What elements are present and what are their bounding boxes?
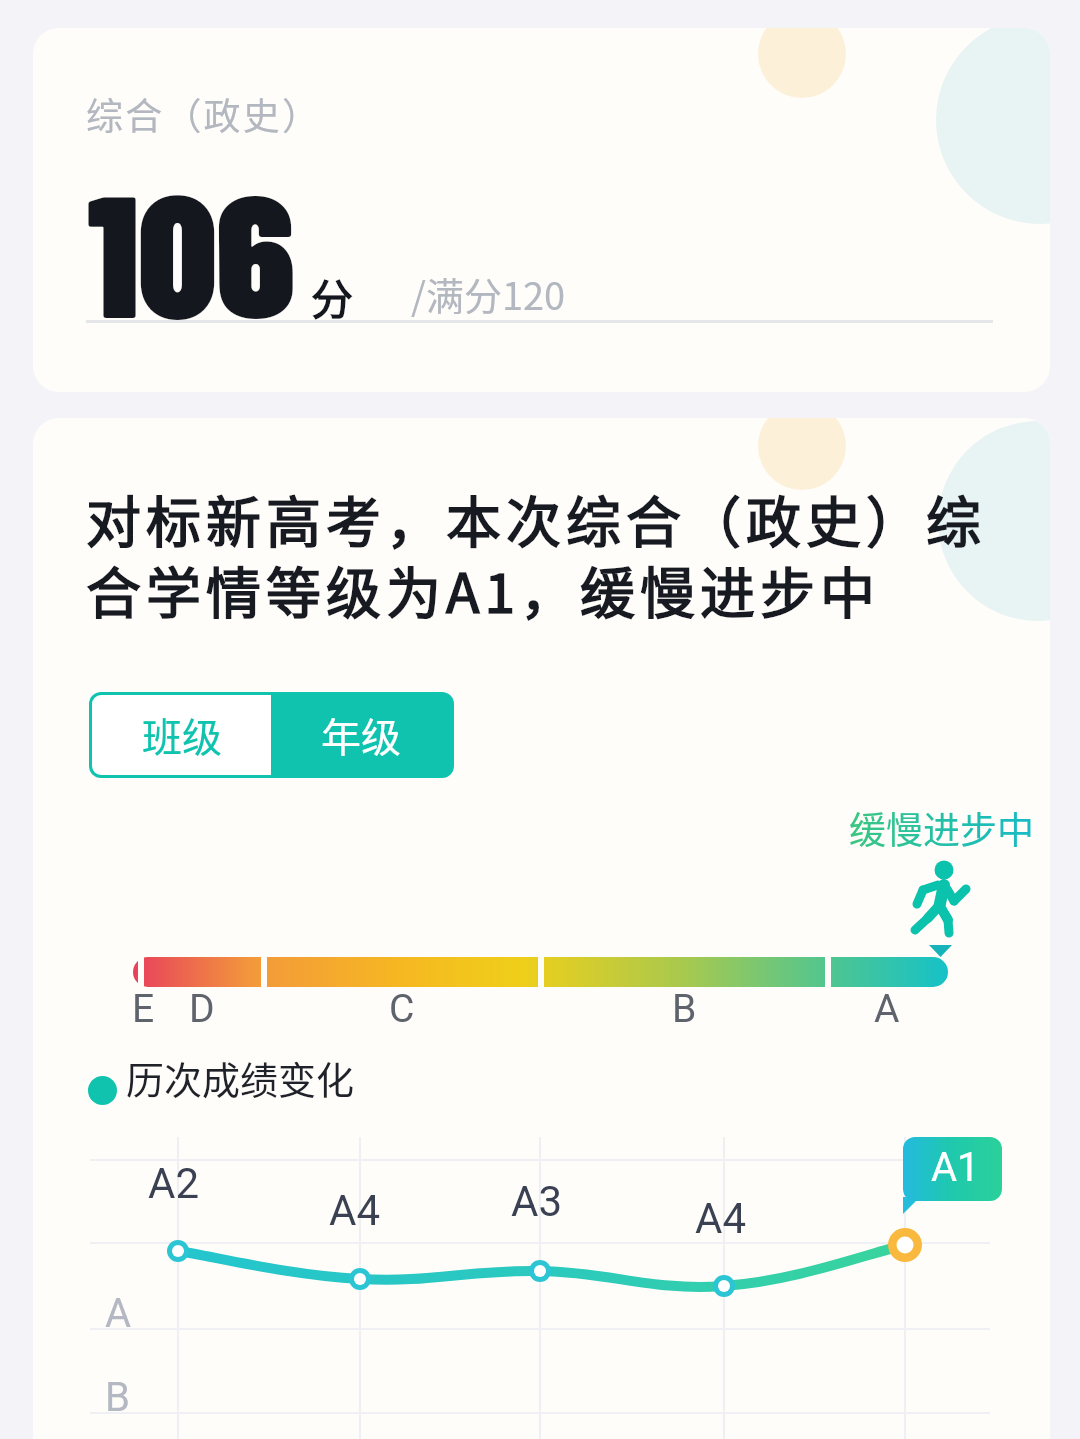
staticText: A4 xyxy=(695,1194,747,1243)
staticText: B xyxy=(672,986,697,1032)
staticText: A4 xyxy=(329,1186,381,1235)
staticText: /满分120 xyxy=(411,266,566,321)
staticText: A xyxy=(105,1290,132,1337)
staticText: A1 xyxy=(931,1144,980,1191)
staticText: A xyxy=(874,986,900,1032)
button[interactable]: 缓慢进步中，当前等级 A xyxy=(833,788,1045,938)
staticText: 班级 xyxy=(142,706,222,764)
staticText: E xyxy=(132,986,155,1032)
staticText: 对标新高考，本次综合（政史）综 合学情等级为A1，缓慢进步中 xyxy=(86,478,987,629)
button[interactable]: 历次成绩变化 xyxy=(83,1046,341,1101)
staticText: D xyxy=(189,986,215,1032)
staticText: 缓慢进步中 xyxy=(849,801,1034,855)
staticText: A3 xyxy=(511,1177,563,1226)
button[interactable]: 年级 xyxy=(271,695,451,775)
staticText: 历次成绩变化 xyxy=(126,1050,355,1105)
staticText: 年级 xyxy=(321,706,401,764)
staticText: 分 xyxy=(311,266,354,327)
staticText: A2 xyxy=(148,1159,200,1208)
button[interactable]: 班级 xyxy=(92,695,271,775)
button[interactable]: A1 xyxy=(903,1137,1002,1201)
staticText: 综合（政史） xyxy=(86,87,322,141)
staticText: 106 xyxy=(87,146,295,352)
staticText: C xyxy=(389,986,415,1032)
staticText: B xyxy=(105,1374,130,1421)
button[interactable]: 综合（政史） xyxy=(33,28,1050,392)
